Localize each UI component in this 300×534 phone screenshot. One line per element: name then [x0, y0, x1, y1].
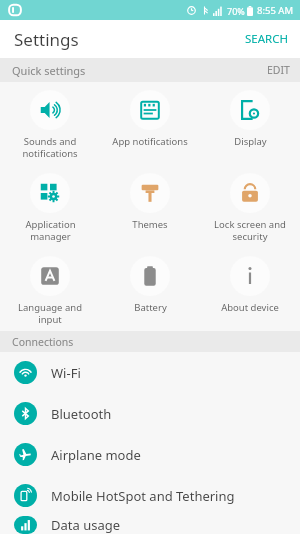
staticText: Connections: [12, 335, 74, 349]
staticText: Display: [234, 135, 267, 148]
staticText: About device: [221, 301, 279, 314]
staticText: Application manager: [25, 218, 76, 242]
button[interactable]: Language and input: [0, 248, 100, 331]
button[interactable]: Mobile HotSpot and Tethering: [0, 475, 300, 516]
button[interactable]: Themes: [100, 165, 200, 237]
staticText: Data usage: [51, 516, 121, 534]
staticText: Sounds and notifications: [22, 135, 78, 159]
button[interactable]: App notifications: [100, 82, 200, 154]
button[interactable]: Application manager: [0, 165, 100, 248]
staticText: Lock screen and security: [214, 218, 286, 242]
button[interactable]: Bluetooth: [0, 393, 300, 434]
button[interactable]: Display: [200, 82, 300, 154]
button[interactable]: About device: [200, 248, 300, 320]
staticText: Mobile HotSpot and Tethering: [51, 487, 235, 505]
staticText: Themes: [132, 218, 168, 231]
button[interactable]: Data usage: [0, 516, 300, 534]
staticText: Wi-Fi: [51, 364, 81, 382]
button[interactable]: Sounds and notifications: [0, 82, 100, 165]
staticText: Language and input: [18, 301, 82, 325]
staticText: Battery: [134, 301, 167, 314]
staticText: Bluetooth: [51, 405, 112, 423]
button[interactable]: Wi-Fi: [0, 352, 300, 393]
staticText: 70%: [227, 5, 245, 17]
staticText: SEARCH: [245, 31, 288, 47]
staticText: Quick settings: [12, 63, 86, 78]
button[interactable]: EDIT: [257, 58, 300, 82]
button[interactable]: Lock screen and security: [200, 165, 300, 248]
staticText: EDIT: [267, 63, 290, 77]
button[interactable]: Battery: [100, 248, 200, 320]
button[interactable]: Airplane mode: [0, 434, 300, 475]
staticText: 8:55 AM: [257, 4, 294, 17]
staticText: Airplane mode: [51, 446, 141, 464]
staticText: App notifications: [112, 135, 188, 148]
button[interactable]: SEARCH: [233, 23, 300, 55]
staticText: Settings: [14, 28, 79, 51]
